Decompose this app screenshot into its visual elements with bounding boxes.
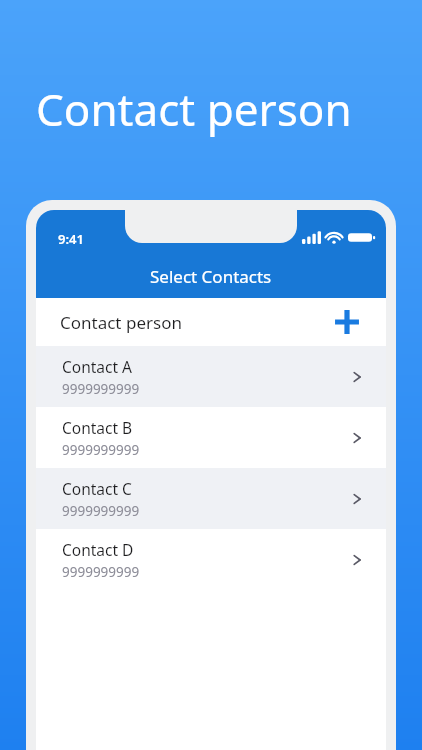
staticText: Contact D — [62, 539, 134, 560]
button[interactable]: Add contact — [332, 307, 362, 337]
staticText: Contact person — [36, 79, 352, 139]
button[interactable]: Contact person — [36, 298, 386, 346]
staticText: 9999999999 — [62, 380, 140, 398]
staticText: 9999999999 — [62, 502, 140, 520]
staticText: Contact B — [62, 417, 133, 438]
staticText: 9:41 — [58, 230, 84, 248]
staticText: 9999999999 — [62, 441, 140, 459]
staticText: Contact C — [62, 478, 132, 499]
button[interactable]: Contact A — [36, 346, 386, 407]
button[interactable]: Contact D — [36, 529, 386, 590]
staticText: Contact person — [60, 311, 182, 334]
staticText: 9999999999 — [62, 563, 140, 581]
button[interactable]: Contact B — [36, 407, 386, 468]
staticText: Contact A — [62, 356, 133, 377]
button[interactable]: Contact C — [36, 468, 386, 529]
staticText: Select Contacts — [150, 265, 272, 288]
